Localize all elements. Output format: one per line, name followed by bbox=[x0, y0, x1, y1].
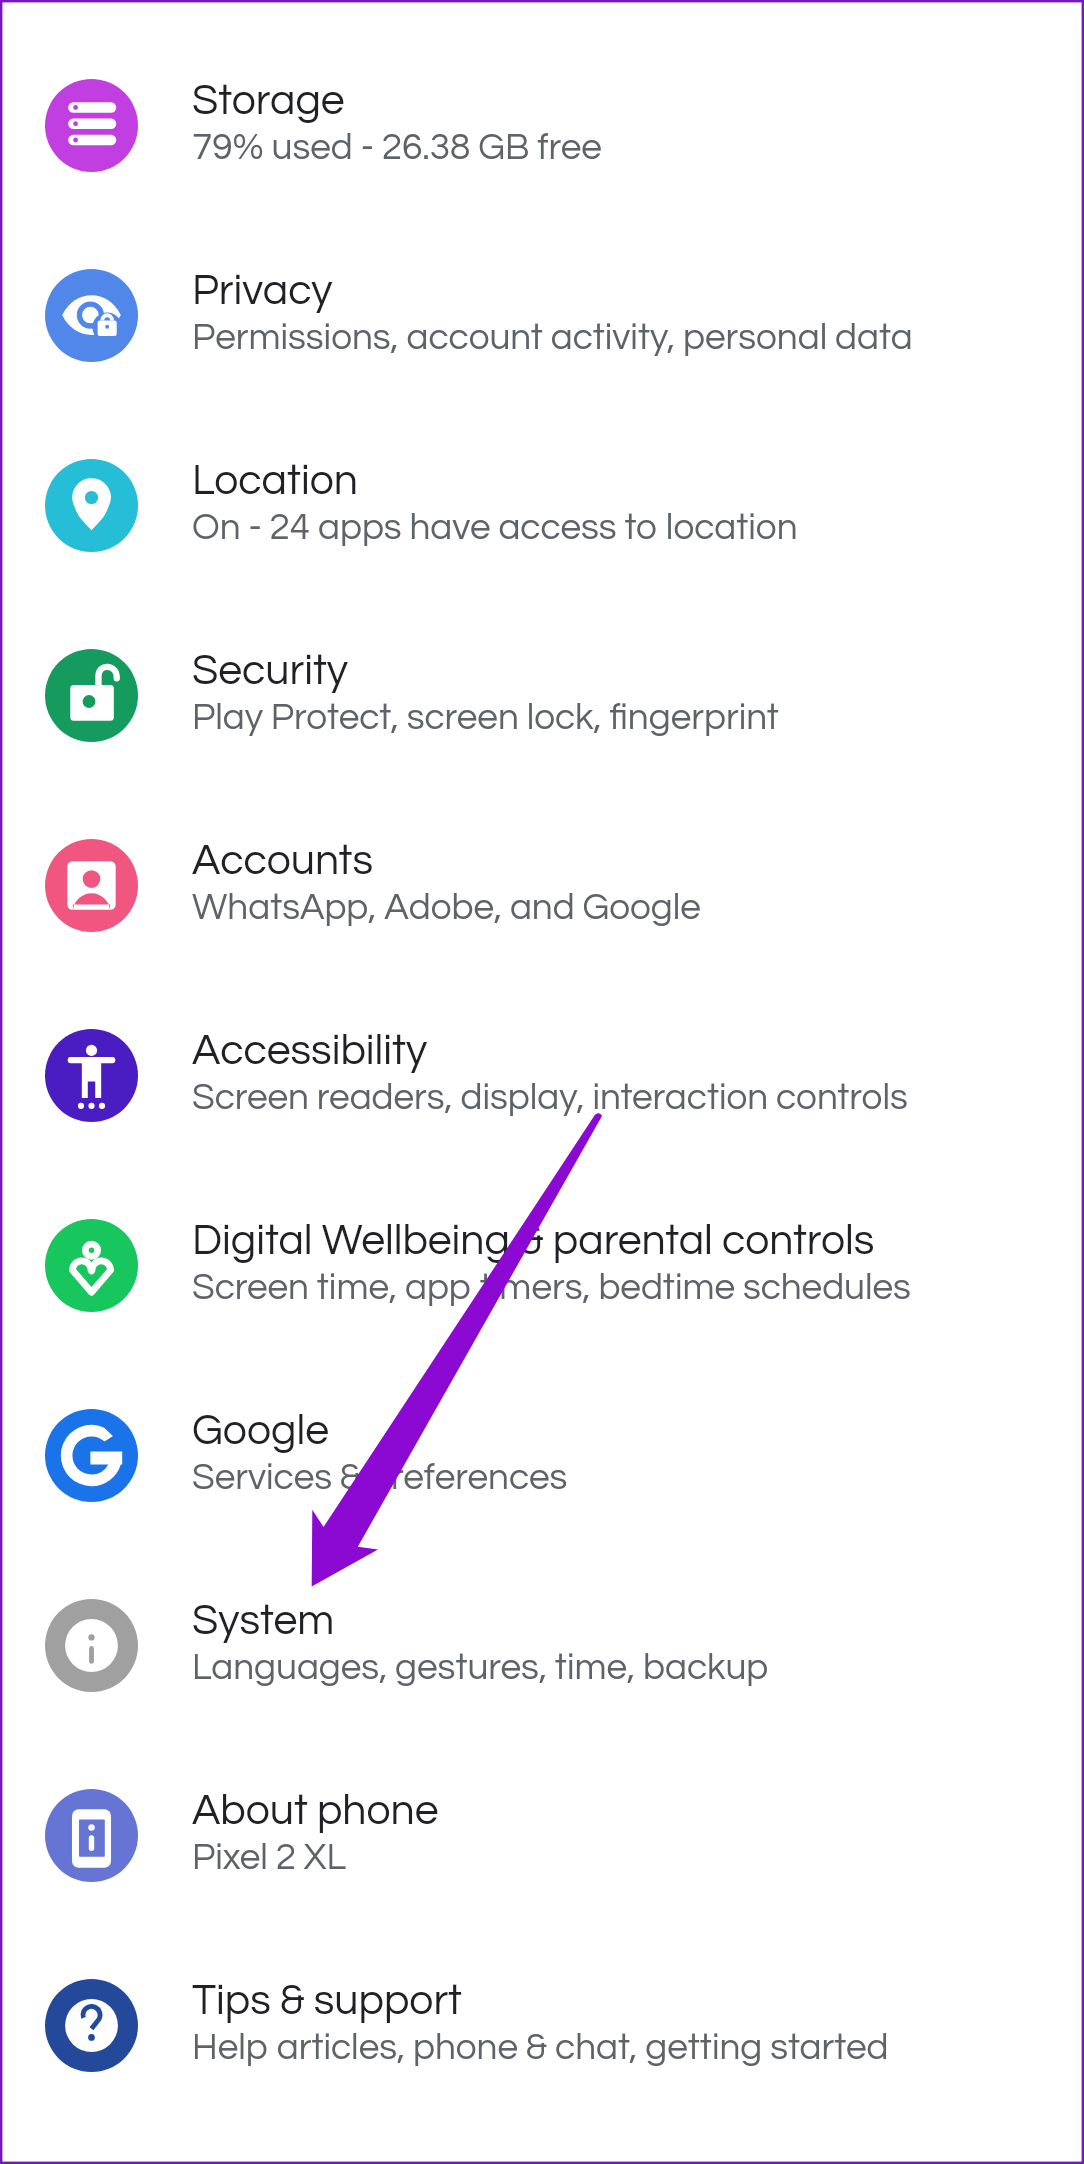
staticText: Privacy bbox=[192, 269, 333, 313]
button[interactable]: Storage bbox=[0, 79, 1084, 269]
other: Accessibility bbox=[45, 1029, 138, 1122]
staticText: System bbox=[192, 1599, 335, 1643]
other: Location bbox=[45, 459, 138, 552]
staticText: Storage bbox=[192, 79, 345, 123]
staticText: Screen readers, display, interaction con… bbox=[192, 1079, 908, 1117]
button[interactable]: Privacy bbox=[0, 269, 1084, 459]
other: System bbox=[45, 1599, 138, 1692]
other: Accounts bbox=[45, 839, 138, 932]
staticText: Accessibility bbox=[192, 1029, 428, 1073]
staticText: Tips & support bbox=[192, 1979, 463, 2023]
button[interactable]: About phone bbox=[0, 1789, 1084, 1979]
other: About phone bbox=[45, 1789, 138, 1882]
staticText: Google bbox=[192, 1409, 329, 1453]
staticText: Pixel 2 XL bbox=[192, 1839, 347, 1877]
other: Tips & support bbox=[45, 1979, 138, 2072]
staticText: Services & preferences bbox=[192, 1459, 568, 1497]
staticText: Location bbox=[192, 459, 358, 503]
button[interactable]: Accounts bbox=[0, 839, 1084, 1029]
staticText: Languages, gestures, time, backup bbox=[192, 1649, 769, 1687]
staticText: On - 24 apps have access to location bbox=[192, 509, 798, 547]
button[interactable]: Google bbox=[0, 1409, 1084, 1599]
button[interactable]: System bbox=[0, 1599, 1084, 1789]
button[interactable]: Digital Wellbeing & parental controls bbox=[0, 1219, 1084, 1409]
staticText: Screen time, app timers, bedtime schedul… bbox=[192, 1269, 911, 1307]
other: Storage bbox=[45, 79, 138, 172]
other: Digital Wellbeing & parental controls bbox=[45, 1219, 138, 1312]
staticText: Permissions, account activity, personal … bbox=[192, 319, 913, 357]
staticText: Digital Wellbeing & parental controls bbox=[192, 1219, 875, 1263]
button[interactable]: Security bbox=[0, 649, 1084, 839]
staticText: WhatsApp, Adobe, and Google bbox=[192, 889, 701, 927]
other: Privacy bbox=[45, 269, 138, 362]
staticText: Help articles, phone & chat, getting sta… bbox=[192, 2029, 889, 2067]
button[interactable]: Tips & support bbox=[0, 1979, 1084, 2164]
button[interactable]: Location bbox=[0, 459, 1084, 649]
staticText: About phone bbox=[192, 1789, 439, 1833]
staticText: Accounts bbox=[192, 839, 374, 883]
staticText: Security bbox=[192, 649, 349, 693]
staticText: 79% used - 26.38 GB free bbox=[192, 129, 602, 167]
other: Google bbox=[45, 1409, 138, 1502]
staticText: Play Protect, screen lock, fingerprint bbox=[192, 699, 779, 737]
other: Security bbox=[45, 649, 138, 742]
button[interactable]: Accessibility bbox=[0, 1029, 1084, 1219]
